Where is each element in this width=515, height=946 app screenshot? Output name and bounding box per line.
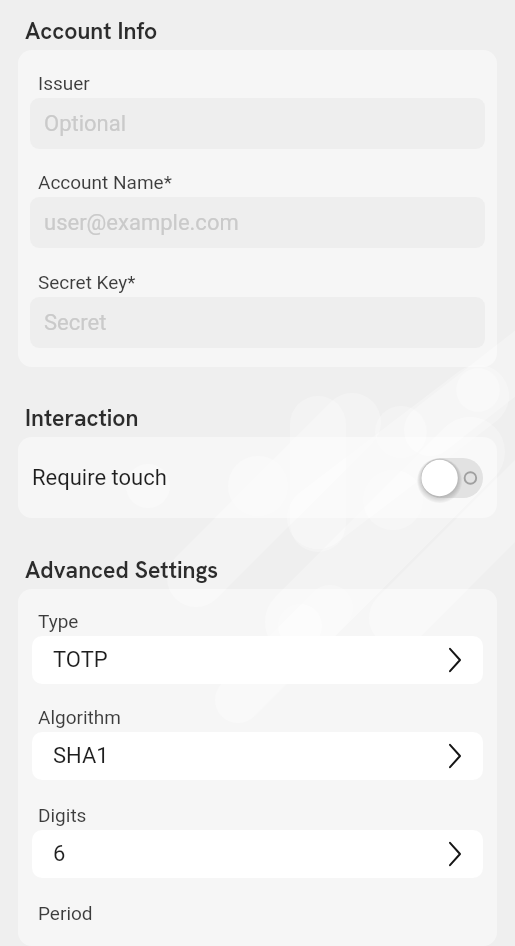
staticText: Type (38, 610, 79, 632)
staticText: user@example.com (44, 210, 239, 236)
staticText: Optional (44, 111, 127, 137)
staticText: 6 (53, 841, 442, 867)
staticText: Algorithm (38, 706, 121, 728)
staticText: TOTP (53, 647, 442, 673)
button[interactable]: Require touch, off (421, 458, 483, 498)
staticText: Period (38, 902, 93, 924)
button[interactable]: Optional (30, 98, 485, 149)
staticText: Secret Key* (38, 271, 136, 293)
button[interactable]: Secret (30, 297, 485, 348)
staticText: SHA1 (53, 743, 442, 769)
button[interactable]: SHA1 (32, 732, 483, 780)
button[interactable]: TOTP (32, 636, 483, 684)
staticText: Interaction (25, 403, 139, 433)
staticText: Account Info (25, 16, 158, 46)
staticText: Account Name* (38, 171, 172, 193)
button[interactable]: 6 (32, 830, 483, 878)
staticText: Secret (44, 310, 107, 336)
button[interactable]: Require touch (18, 437, 497, 518)
staticText: Require touch (32, 465, 421, 491)
staticText: Issuer (38, 72, 90, 94)
button[interactable]: user@example.com (30, 197, 485, 248)
staticText: Digits (38, 804, 87, 826)
staticText: Advanced Settings (25, 555, 218, 585)
